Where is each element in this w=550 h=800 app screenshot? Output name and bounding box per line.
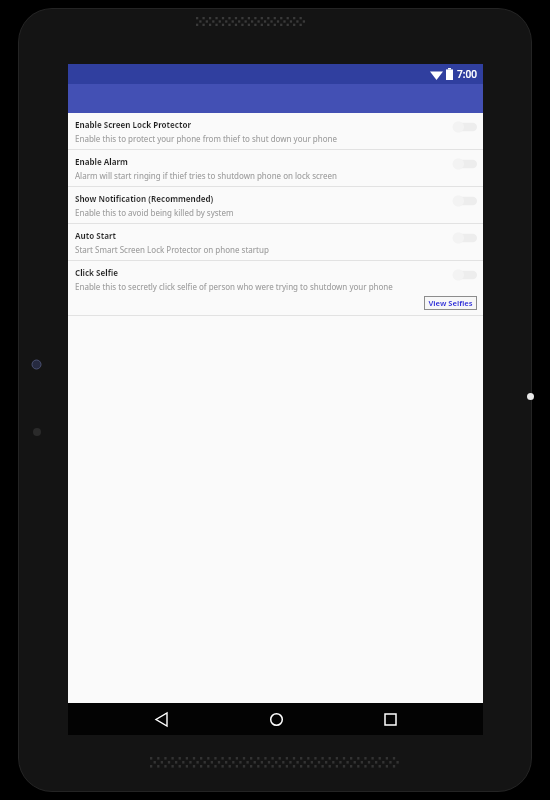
staticText: View Selfies [428,298,473,308]
button[interactable]: Click Selfie [68,261,483,315]
staticText: 7:00 [457,67,477,81]
staticText: Enable Screen Lock Protector [75,119,191,130]
button[interactable]: Toggle setting [449,267,477,283]
button[interactable]: Enable Screen Lock Protector [68,113,483,149]
staticText: Show Notification (Recommended) [75,193,214,204]
button[interactable]: Show Notification (Recommended) [68,187,483,223]
button[interactable]: Recent apps [368,703,412,735]
button[interactable]: Toggle setting [449,156,477,172]
button[interactable]: Enable Alarm [68,150,483,186]
button[interactable]: Toggle setting [449,230,477,246]
button[interactable]: Home [254,703,298,735]
staticText: Click Selfie [75,267,118,278]
staticText: Enable Alarm [75,156,128,167]
button[interactable]: Auto Start [68,224,483,260]
button[interactable]: Back [139,703,183,735]
staticText: Alarm will start ringing if thief tries … [75,170,337,181]
staticText: Auto Start [75,230,117,241]
button[interactable]: Toggle setting [449,119,477,135]
staticText: Enable this to avoid being killed by sys… [75,207,234,218]
staticText: Start Smart Screen Lock Protector on pho… [75,244,269,255]
button[interactable]: Toggle setting [449,193,477,209]
staticText: Enable this to protect your phone from t… [75,133,338,144]
button[interactable]: View Selfies [424,296,477,310]
staticText: Enable this to secretly click selfie of … [75,281,393,292]
